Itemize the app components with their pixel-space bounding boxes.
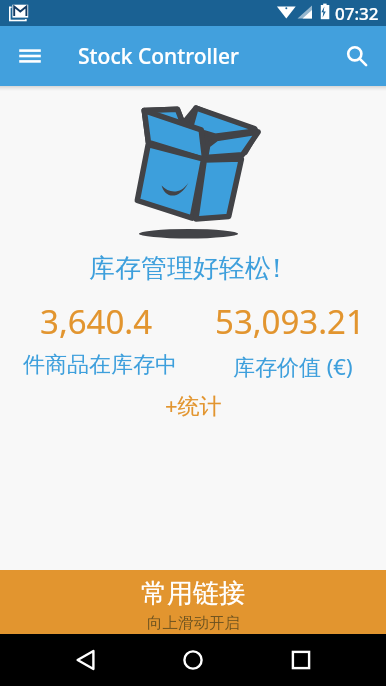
button[interactable]: Menu	[8, 34, 52, 78]
staticText: 库存价值 (€)	[233, 351, 353, 381]
staticText: 库存管理好轻松	[89, 252, 271, 285]
button[interactable]: +统计	[161, 386, 226, 424]
staticText: 53,093.21	[215, 299, 365, 344]
staticText: +统计	[165, 390, 222, 420]
button[interactable]: Search	[334, 34, 378, 78]
staticText: 常用链接	[141, 577, 245, 610]
staticText: Stock Controller	[78, 42, 239, 71]
button[interactable]: Back	[60, 634, 112, 686]
button[interactable]: 常用链接	[0, 570, 386, 634]
staticText: 向上滑动开启	[147, 613, 240, 633]
staticText: 3,640.4	[40, 299, 153, 344]
button[interactable]: Home	[167, 634, 219, 686]
staticText: ！	[264, 252, 290, 285]
staticText: 件商品在库存中	[23, 351, 177, 379]
staticText: 07:32	[335, 2, 379, 25]
button[interactable]: Recent apps	[275, 634, 327, 686]
